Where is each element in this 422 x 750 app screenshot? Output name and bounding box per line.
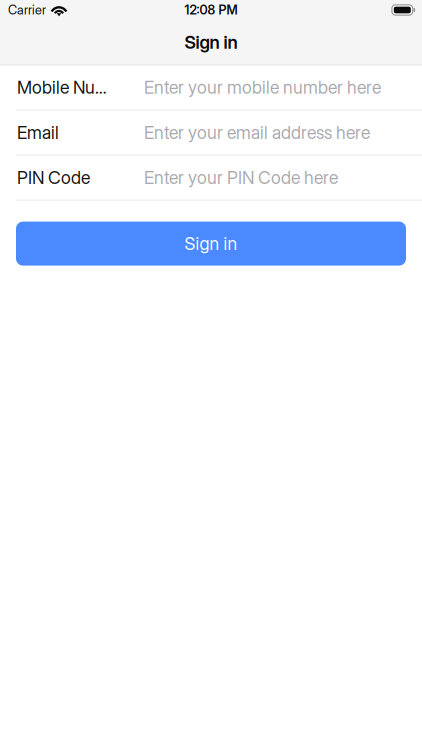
staticText: Enter your email address here <box>144 122 370 143</box>
staticText: Email <box>17 122 59 143</box>
button[interactable]: Email <box>0 110 422 155</box>
staticText: Enter your mobile number here <box>144 77 381 98</box>
button[interactable]: PIN Code <box>0 155 422 200</box>
staticText: Carrier <box>8 2 46 18</box>
textField[interactable]: Enter your email address here <box>144 122 406 143</box>
staticText: 12:08 PM <box>184 2 237 18</box>
staticText: Sign in <box>184 31 237 53</box>
staticText: PIN Code <box>17 167 90 188</box>
button[interactable]: Sign in <box>16 222 406 266</box>
textField[interactable]: Enter your mobile number here <box>144 77 406 98</box>
staticText: Mobile Number <box>17 77 107 98</box>
button[interactable]: Mobile Number <box>0 65 422 109</box>
textField[interactable]: Enter your PIN Code here <box>144 167 406 188</box>
staticText: Sign in <box>184 233 237 254</box>
staticText: Enter your PIN Code here <box>144 167 338 188</box>
